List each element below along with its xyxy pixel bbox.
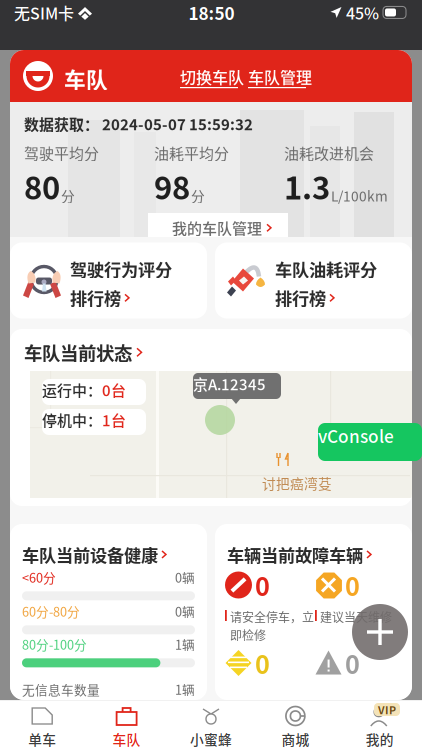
staticText: 单车 [28,729,56,749]
staticText: 即检修 [230,626,266,644]
staticText: 1台 [102,409,126,431]
staticText: 京A.12345 [193,373,266,395]
staticText: 驾驶平均分 [24,142,99,164]
staticText: vConsole [318,423,394,448]
staticText: 分 [61,185,75,205]
staticText: 我的车队管理 [172,217,262,239]
staticText: 80分-100分 [22,635,87,653]
staticText: 0 [345,645,360,681]
staticText: 车辆当前故障车辆 [227,542,363,567]
staticText: 车队当前状态 [24,339,132,366]
staticText: 运行中： [42,379,102,401]
staticText: 60分-80分 [22,602,80,620]
staticText: 商城 [281,729,309,749]
button[interactable]: 我的车队管理 [148,213,288,237]
button[interactable]: 切换车队 [180,65,244,88]
staticText: 车队油耗评分 [275,256,377,281]
staticText: 无SIM卡 [14,1,74,24]
staticText: 0辆 [175,602,195,620]
button[interactable]: Add [352,604,408,660]
staticText: 切换车队 [180,65,244,88]
staticText: 数据获取： 2024-05-07 15:59:32 [24,113,253,135]
staticText: 45% [346,1,379,24]
staticText: 排行榜 [275,285,326,310]
staticText: 车队当前设备健康 [22,542,158,567]
staticText: 0 [345,567,360,603]
staticText: 车队 [64,63,108,94]
staticText: L/100km [331,185,388,205]
staticText: 车队 [113,729,141,749]
staticText: 讨把癌湾芟 [262,473,332,493]
button[interactable]: 小蜜蜂 [169,700,253,750]
staticText: 1.3 [284,164,330,208]
staticText: 0 [255,645,270,681]
staticText: 18:50 [188,0,234,25]
staticText: 油耗改进机会 [284,142,374,164]
staticText: 分 [191,185,205,205]
staticText: 请安全停车，立 [230,608,314,625]
staticText: 油耗平均分 [154,142,229,164]
staticText: 建议当天维修 [320,608,392,625]
staticText: 0辆 [175,568,195,586]
staticText: 1辆 [175,635,195,653]
button[interactable]: 商城 [253,700,338,750]
button[interactable]: 车队当前状态 [24,339,142,366]
staticText: <60分 [22,568,56,586]
button[interactable]: 车队 [84,700,169,750]
button[interactable]: 车队管理 [248,65,312,88]
staticText: 80 [24,164,60,208]
staticText: 0台 [102,379,126,401]
button[interactable]: 车辆当前故障车辆 [227,542,371,567]
staticText: 排行榜 [70,285,121,310]
button[interactable]: 车队油耗评分 [215,242,412,318]
staticText: 无信息车数量 [22,680,100,698]
staticText: 1辆 [175,680,195,698]
staticText: 车队管理 [248,65,312,88]
button[interactable]: 单车 [0,700,84,750]
button[interactable]: vConsole [318,423,422,461]
staticText: 停机中： [42,409,102,431]
button[interactable]: 我的 [338,700,422,750]
staticText: 98 [154,164,190,208]
button[interactable]: 驾驶行为评分 [10,242,207,318]
staticText: 驾驶行为评分 [70,256,172,281]
staticText: VIP [378,702,396,717]
staticText: 小蜜蜂 [190,729,232,749]
staticText: 0 [255,567,270,603]
button[interactable]: 车队当前设备健康 [22,542,166,567]
staticText: 我的 [366,729,394,749]
